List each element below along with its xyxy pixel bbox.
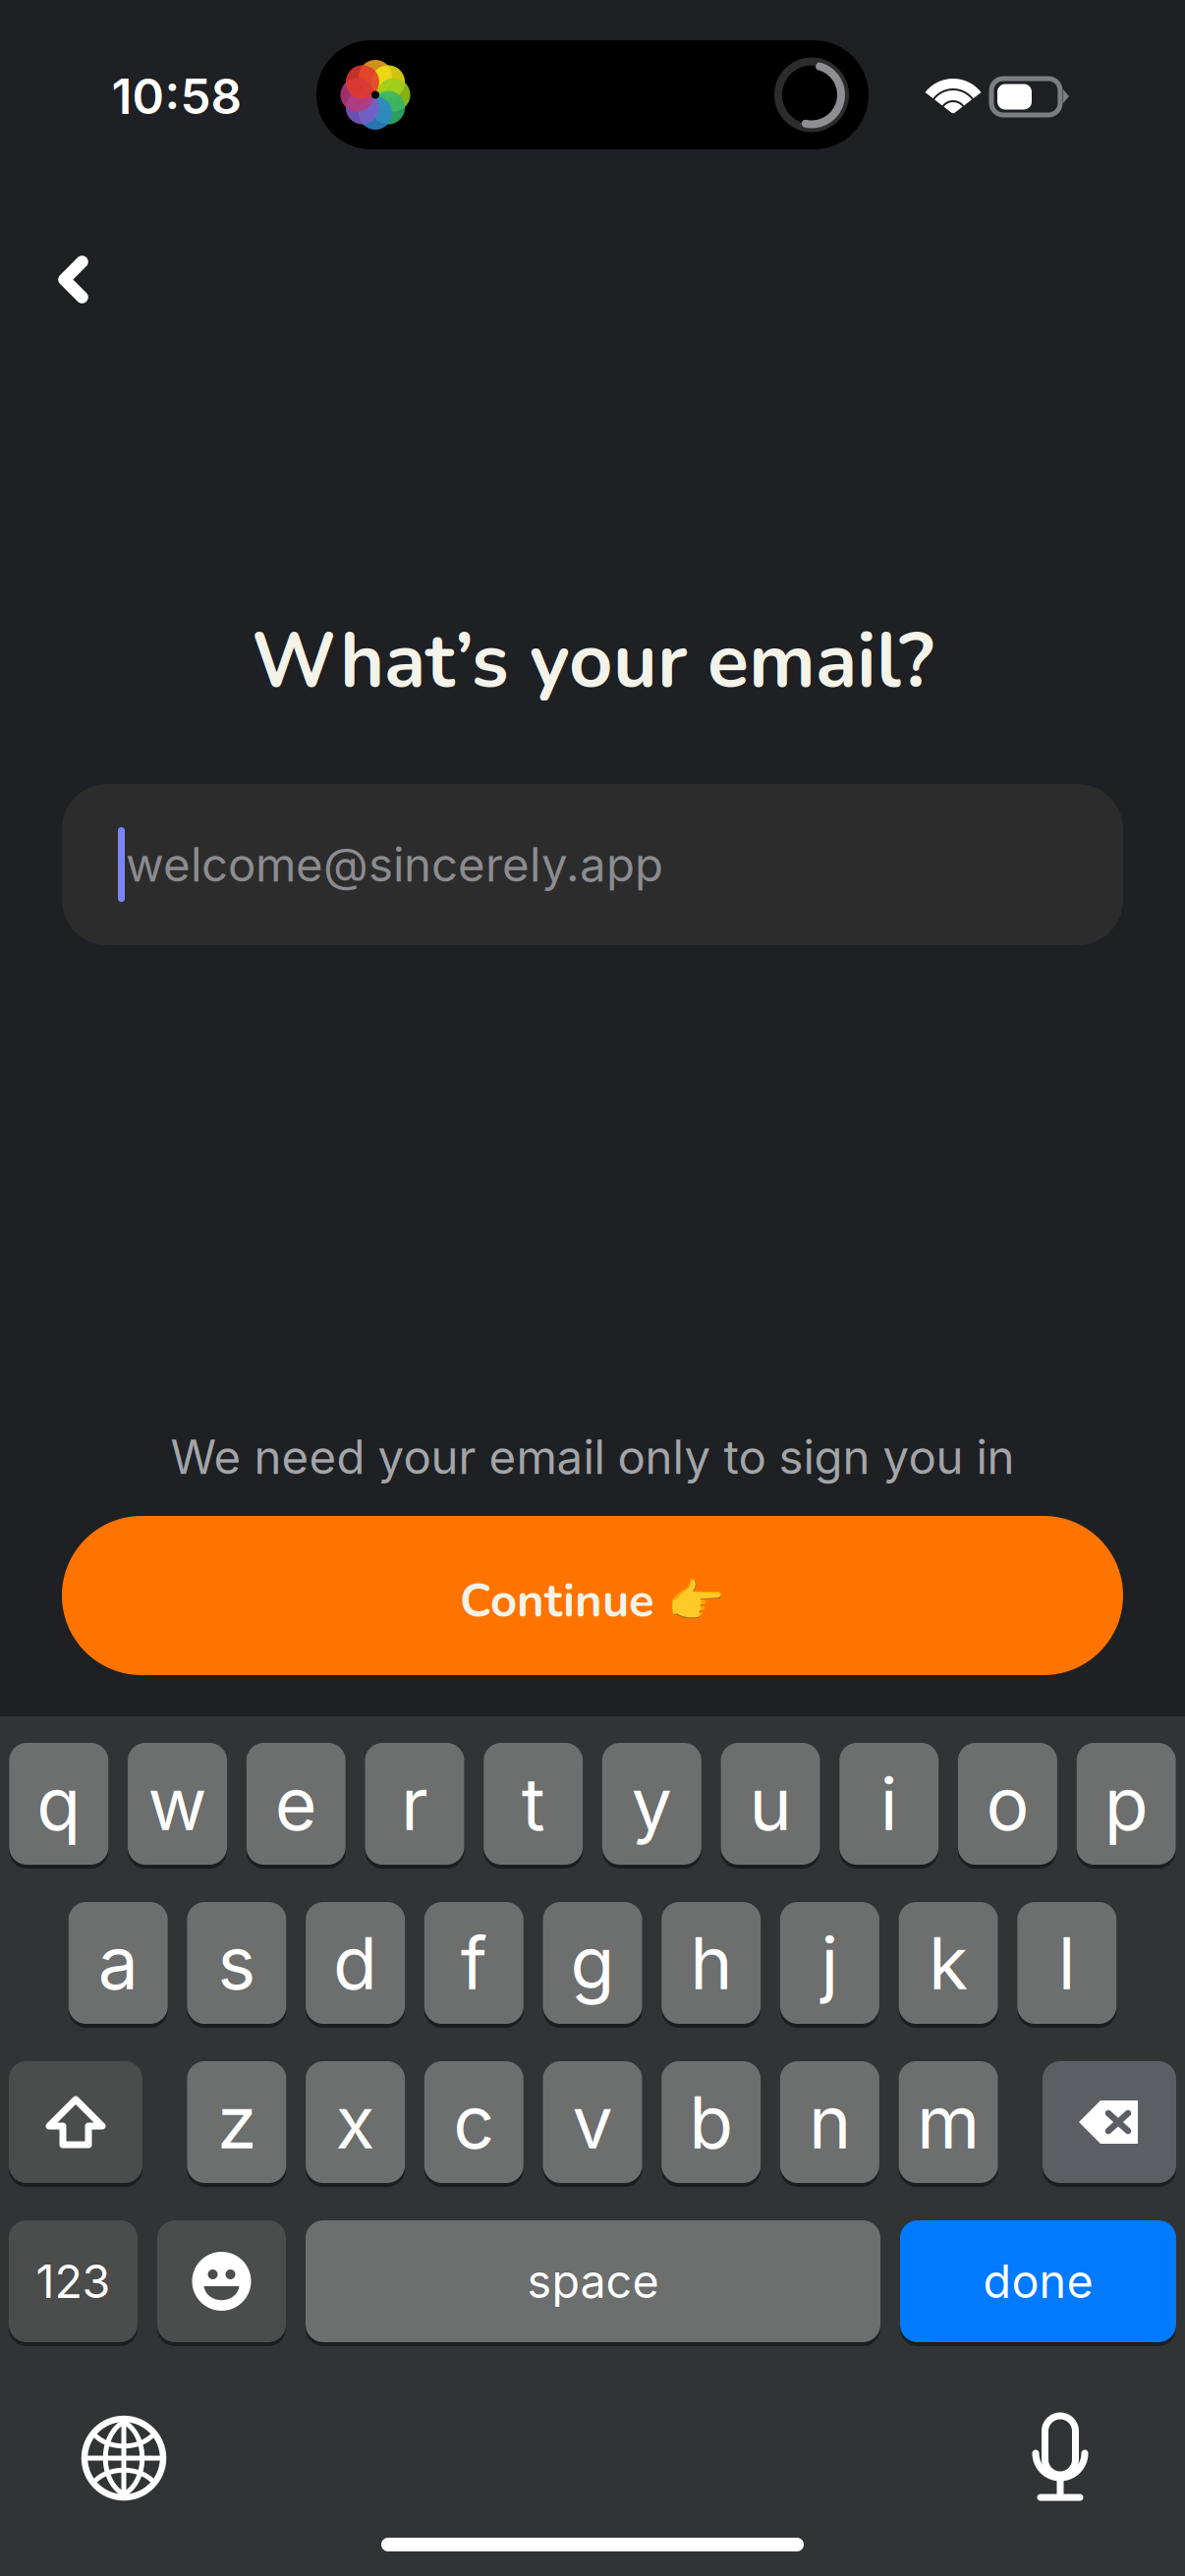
button[interactable]: v bbox=[543, 2059, 642, 2185]
button[interactable]: n bbox=[780, 2059, 879, 2185]
button[interactable]: Continue 👉 bbox=[0, 1516, 1185, 1675]
button[interactable]: l bbox=[1017, 1900, 1117, 2026]
button[interactable]: b bbox=[661, 2059, 761, 2185]
button[interactable]: p bbox=[1077, 1741, 1176, 1867]
staticText: k bbox=[929, 1919, 968, 2006]
staticText: u bbox=[749, 1760, 792, 1847]
staticText: Continue 👉 bbox=[460, 1570, 725, 1633]
button[interactable]: Delete bbox=[1043, 2059, 1176, 2185]
staticText: 123 bbox=[36, 2254, 111, 2309]
button[interactable]: done bbox=[900, 2218, 1176, 2344]
staticText: b bbox=[689, 2078, 733, 2166]
staticText: s bbox=[218, 1919, 256, 2006]
button[interactable]: Emoji bbox=[157, 2218, 286, 2344]
staticText: g bbox=[570, 1919, 615, 2006]
button[interactable]: w bbox=[128, 1741, 227, 1867]
staticText: done bbox=[983, 2254, 1093, 2309]
button[interactable]: Dictation bbox=[996, 2394, 1124, 2522]
button[interactable]: c bbox=[424, 2059, 524, 2185]
staticText: f bbox=[461, 1919, 487, 2006]
button[interactable]: Back bbox=[19, 225, 129, 335]
staticText: 10:58 bbox=[112, 67, 242, 126]
button[interactable]: u bbox=[721, 1741, 820, 1867]
staticText: j bbox=[821, 1919, 839, 2006]
button[interactable]: e bbox=[246, 1741, 346, 1867]
staticText: h bbox=[690, 1919, 732, 2006]
button[interactable]: a bbox=[68, 1900, 168, 2026]
button[interactable]: o bbox=[958, 1741, 1057, 1867]
button[interactable]: r bbox=[365, 1741, 464, 1867]
staticText: d bbox=[333, 1919, 377, 2006]
staticText: space bbox=[527, 2254, 659, 2309]
staticText: What’s your email? bbox=[252, 609, 933, 713]
staticText: q bbox=[37, 1760, 81, 1847]
staticText: i bbox=[880, 1760, 898, 1847]
button[interactable]: j bbox=[780, 1900, 879, 2026]
staticText: l bbox=[1058, 1919, 1076, 2006]
button[interactable]: space bbox=[306, 2218, 880, 2344]
staticText: w bbox=[148, 1760, 207, 1847]
staticText: We need your email only to sign you in bbox=[170, 1429, 1015, 1485]
button[interactable]: k bbox=[899, 1900, 998, 2026]
button[interactable]: m bbox=[899, 2059, 998, 2185]
button[interactable]: h bbox=[661, 1900, 761, 2026]
button[interactable]: t bbox=[484, 1741, 583, 1867]
button[interactable]: q bbox=[9, 1741, 108, 1867]
button[interactable]: i bbox=[839, 1741, 939, 1867]
staticText: y bbox=[632, 1760, 672, 1847]
staticText: r bbox=[401, 1760, 428, 1847]
button[interactable]: g bbox=[543, 1900, 642, 2026]
staticText: t bbox=[521, 1760, 545, 1847]
button[interactable]: x bbox=[306, 2059, 405, 2185]
button[interactable]: 123 bbox=[9, 2218, 138, 2344]
staticText: n bbox=[809, 2078, 851, 2166]
staticText: v bbox=[572, 2078, 613, 2166]
button[interactable]: z bbox=[187, 2059, 286, 2185]
button[interactable]: Shift bbox=[9, 2059, 142, 2185]
staticText: z bbox=[217, 2078, 256, 2166]
staticText: e bbox=[275, 1760, 317, 1847]
button[interactable]: Next keyboard bbox=[61, 2394, 187, 2522]
staticText: p bbox=[1104, 1760, 1148, 1847]
button[interactable]: d bbox=[306, 1900, 405, 2026]
staticText: o bbox=[986, 1760, 1029, 1847]
button[interactable]: f bbox=[424, 1900, 524, 2026]
staticText: c bbox=[453, 2078, 495, 2166]
staticText: x bbox=[336, 2078, 375, 2166]
staticText: welcome@sincerely.app bbox=[126, 836, 663, 893]
button[interactable]: s bbox=[187, 1900, 286, 2026]
staticText: a bbox=[98, 1919, 138, 2006]
button[interactable]: y bbox=[602, 1741, 701, 1867]
staticText: m bbox=[917, 2078, 980, 2166]
